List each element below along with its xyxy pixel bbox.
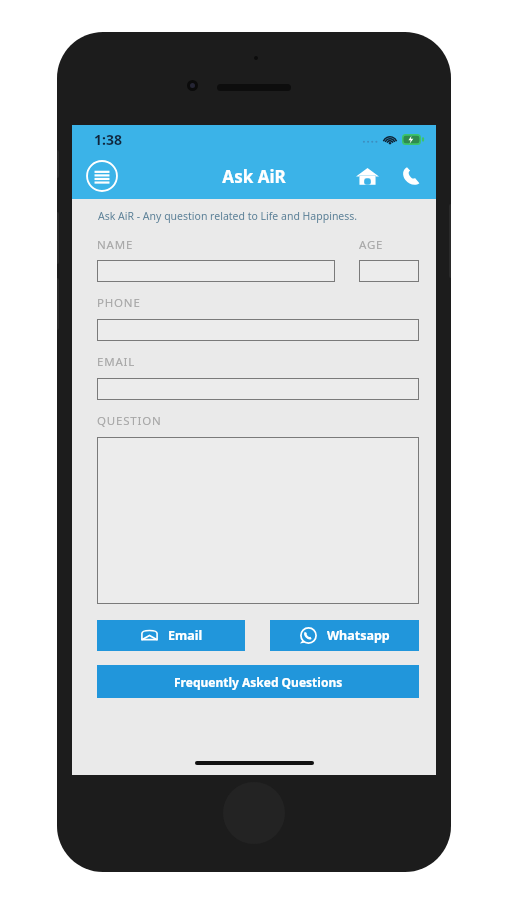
button[interactable]: Email (97, 620, 245, 651)
staticText: Ask AiR (222, 165, 286, 188)
staticText: Email (168, 627, 203, 644)
button[interactable]: Frequently Asked Questions (97, 665, 419, 698)
button[interactable]: Home (350, 159, 384, 193)
staticText: Whatsapp (327, 627, 390, 644)
button[interactable]: Whatsapp (270, 620, 419, 651)
staticText: Ask AiR - Any question related to Life a… (98, 209, 426, 223)
button[interactable] (97, 437, 419, 604)
button[interactable] (97, 260, 335, 282)
button[interactable] (97, 319, 419, 341)
staticText: EMAIL (97, 354, 136, 370)
staticText: AGE (359, 237, 384, 253)
button[interactable]: Call (396, 161, 426, 191)
button[interactable] (359, 260, 419, 282)
button[interactable]: Open navigation menu (85, 159, 119, 193)
button[interactable] (97, 378, 419, 400)
staticText: NAME (97, 237, 134, 253)
staticText: QUESTION (97, 413, 162, 429)
staticText: 1:38 (94, 130, 122, 149)
staticText: Frequently Asked Questions (174, 674, 343, 690)
staticText: PHONE (97, 295, 141, 311)
